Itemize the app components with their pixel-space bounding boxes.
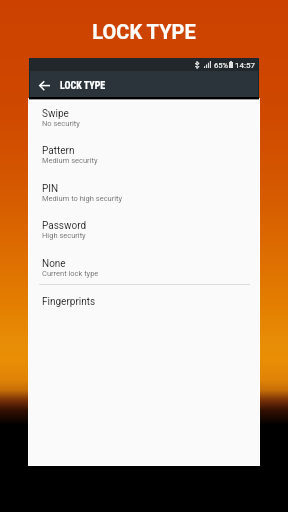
staticText: None bbox=[42, 258, 66, 270]
staticText: No security bbox=[42, 119, 80, 128]
button[interactable]: Password bbox=[29, 220, 259, 258]
button[interactable]: Swipe bbox=[29, 108, 259, 146]
button[interactable]: PIN bbox=[29, 183, 259, 221]
button[interactable]: Back bbox=[35, 73, 53, 99]
button[interactable]: Fingerprints bbox=[29, 286, 259, 312]
staticText: Pattern bbox=[42, 145, 75, 157]
staticText: Password bbox=[42, 220, 87, 232]
staticText: PIN bbox=[42, 183, 59, 195]
button[interactable]: Pattern bbox=[29, 145, 259, 183]
staticText: Medium to high security bbox=[42, 194, 123, 203]
staticText: 65% bbox=[214, 61, 229, 70]
staticText: Fingerprints bbox=[42, 296, 96, 308]
staticText: 14:57 bbox=[235, 61, 255, 70]
staticText: LOCK TYPE bbox=[60, 80, 106, 92]
staticText: LOCK TYPE bbox=[0, 20, 288, 43]
button[interactable]: None bbox=[29, 258, 259, 296]
staticText: Medium security bbox=[42, 156, 98, 165]
staticText: Current lock type bbox=[42, 269, 99, 278]
staticText: Swipe bbox=[42, 108, 69, 120]
staticText: High security bbox=[42, 231, 86, 240]
